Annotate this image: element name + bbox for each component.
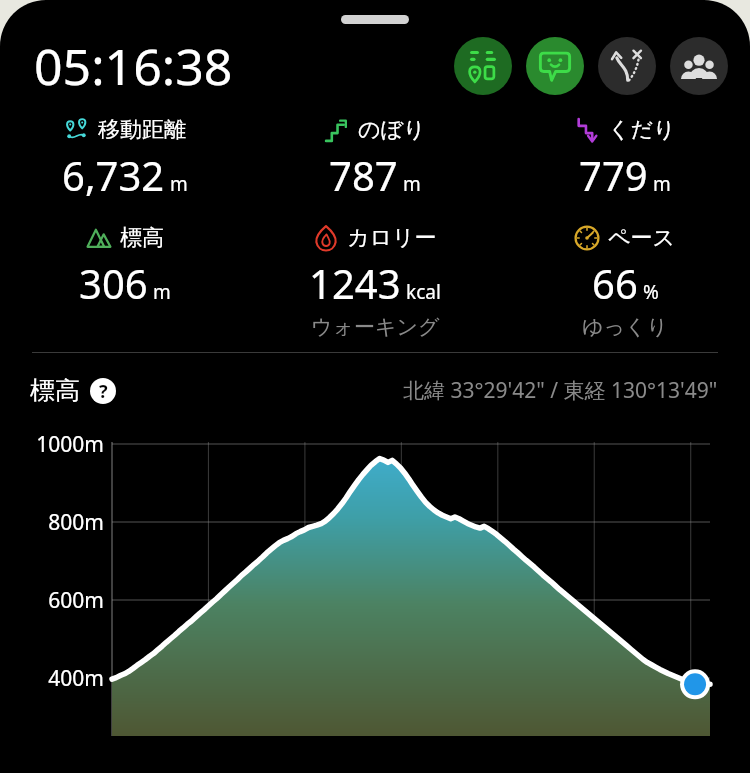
staticText: 標高 <box>120 224 164 252</box>
button[interactable]: カロリー <box>250 224 500 340</box>
button[interactable]: Group <box>670 37 728 95</box>
staticText: くだり <box>608 116 676 144</box>
staticText: 移動距離 <box>98 116 186 144</box>
button[interactable]: くだり <box>500 116 750 202</box>
staticText: 779 <box>579 148 648 202</box>
staticText: ウォーキング <box>311 314 440 340</box>
staticText: ゆっくり <box>582 314 668 340</box>
button[interactable]: Route off <box>598 37 656 95</box>
staticText: m <box>403 171 421 197</box>
button[interactable]: Waypoints <box>454 37 512 95</box>
button[interactable]: Messages <box>526 37 584 95</box>
button[interactable]: ペース <box>500 224 750 340</box>
staticText: 306 <box>79 256 148 310</box>
staticText: 北緯 33°29'42" / 東経 130°13'49" <box>403 376 718 405</box>
staticText: 6,732 <box>62 148 165 202</box>
staticText: ペース <box>608 224 676 252</box>
staticText: 400m <box>0 664 104 693</box>
button[interactable]: 移動距離 <box>0 116 250 202</box>
staticText: 05:16:38 <box>34 32 233 100</box>
staticText: m <box>153 279 171 305</box>
staticText: 66 <box>592 256 638 310</box>
button[interactable]: 標高 <box>0 224 250 310</box>
staticText: のぼり <box>358 116 426 144</box>
button[interactable]: ? <box>90 378 116 404</box>
staticText: カロリー <box>347 224 437 252</box>
staticText: 800m <box>0 508 104 537</box>
staticText: 1000m <box>0 430 104 459</box>
button[interactable]: のぼり <box>250 116 500 202</box>
staticText: 600m <box>0 586 104 615</box>
staticText: m <box>653 171 671 197</box>
staticText: kcal <box>406 279 441 305</box>
staticText: % <box>643 279 659 305</box>
staticText: 標高 <box>30 375 80 406</box>
staticText: ? <box>99 379 108 404</box>
staticText: 1243 <box>309 256 401 310</box>
staticText: m <box>170 171 188 197</box>
staticText: 787 <box>329 148 398 202</box>
